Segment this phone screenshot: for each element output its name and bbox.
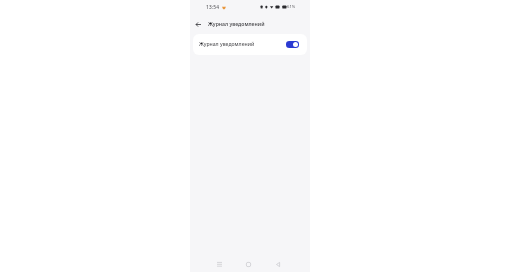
staticText: Журнал уведомлений [199, 41, 286, 48]
button[interactable] [286, 41, 299, 48]
button[interactable] [271, 257, 285, 271]
button[interactable] [212, 257, 226, 271]
staticText: 13:54 [206, 4, 220, 11]
button[interactable]: Журнал уведомлений [193, 34, 307, 55]
button[interactable] [241, 257, 255, 271]
staticText: 61% [287, 4, 296, 10]
staticText: Журнал уведомлений [208, 21, 265, 28]
button[interactable] [193, 19, 204, 30]
